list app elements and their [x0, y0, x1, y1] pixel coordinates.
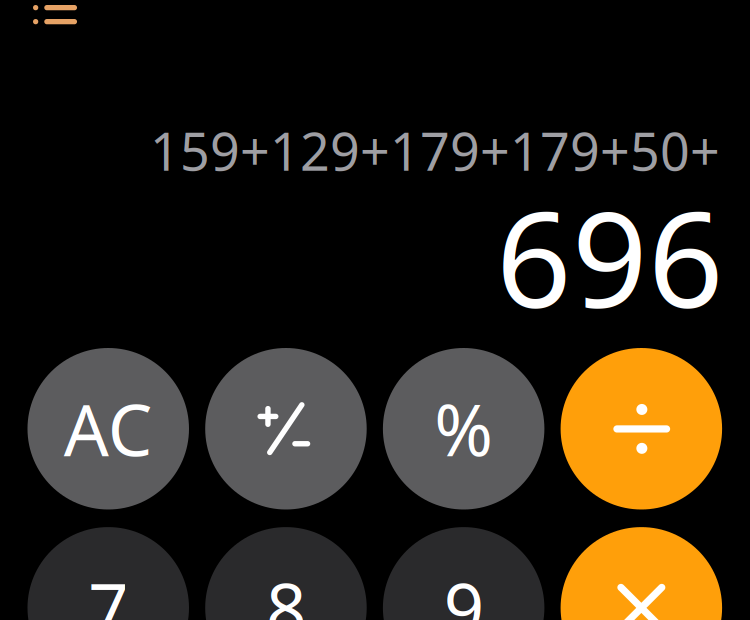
button[interactable]: 7 [27, 527, 189, 620]
staticText: 9 [444, 561, 484, 620]
staticText: 8 [266, 561, 306, 620]
button[interactable]: Plus minus [205, 348, 367, 509]
staticText: AC [64, 382, 153, 476]
button[interactable]: History [33, 5, 77, 25]
button[interactable]: % [383, 348, 544, 509]
staticText: 696 [496, 169, 724, 344]
button[interactable]: 9 [383, 527, 544, 620]
staticText: 159+129+179+179+50+ [150, 116, 720, 185]
staticText: 7 [88, 561, 128, 620]
button[interactable]: Divide [561, 348, 722, 509]
button[interactable]: Multiply [561, 527, 722, 620]
staticText: % [434, 382, 493, 476]
button[interactable]: AC [27, 348, 189, 509]
button[interactable]: 8 [205, 527, 367, 620]
